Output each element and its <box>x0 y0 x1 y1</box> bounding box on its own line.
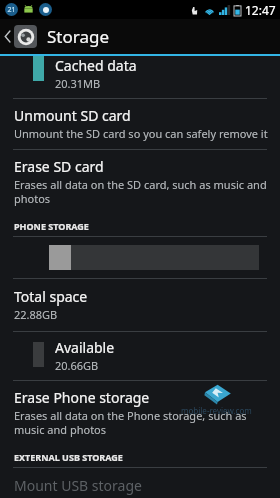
staticText: Erase Phone storage <box>14 388 150 407</box>
staticText: 20.66GB <box>55 358 99 373</box>
staticText: Total space <box>14 287 88 306</box>
button[interactable]: Erase SD card <box>0 150 280 214</box>
staticText: 21 <box>7 5 16 15</box>
button[interactable]: Erase Phone storage <box>0 381 280 445</box>
staticText: Erases all data on the SD card, such as … <box>14 177 268 206</box>
staticText: 12:47 <box>245 2 276 18</box>
staticText: EXTERNAL USB STORAGE <box>14 451 123 463</box>
staticText: Storage <box>47 25 110 48</box>
staticText: mobile-review.com <box>181 405 252 416</box>
staticText: Cached data <box>55 56 137 75</box>
staticText: Erase SD card <box>14 157 104 176</box>
staticText: Unmount SD card <box>14 106 131 125</box>
button[interactable]: Navigate up <box>0 25 39 48</box>
staticText: PHONE STORAGE <box>14 220 89 232</box>
staticText: Mount USB storage <box>14 476 142 495</box>
button[interactable]: Cached data <box>0 56 280 98</box>
button[interactable]: Total space <box>0 279 280 331</box>
staticText: 22.88GB <box>14 307 58 322</box>
staticText: Unmount the SD card so you can safely re… <box>14 126 268 141</box>
staticText: 20.31MB <box>55 76 101 91</box>
button[interactable]: Available <box>0 332 280 380</box>
staticText: Available <box>55 338 115 357</box>
staticText: Erases all data on the Phone storage, su… <box>14 408 268 437</box>
button[interactable]: Unmount SD card <box>0 99 280 149</box>
